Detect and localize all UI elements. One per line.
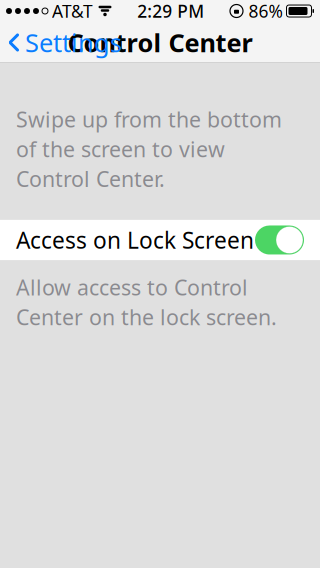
button[interactable]: Settings	[0, 20, 122, 65]
staticText: Control Center	[67, 26, 252, 59]
staticText: AT&T	[52, 0, 93, 22]
staticText: Access on Lock Screen	[16, 225, 254, 255]
staticText: Allow access to Control Center on the lo…	[16, 273, 277, 331]
staticText: 2:29 PM	[137, 0, 204, 22]
staticText: Swipe up from the bottom of the screen t…	[16, 105, 282, 193]
staticText: 86%	[248, 0, 282, 22]
staticText: Settings	[25, 26, 122, 59]
button[interactable]: Access on Lock Screen	[0, 219, 320, 261]
